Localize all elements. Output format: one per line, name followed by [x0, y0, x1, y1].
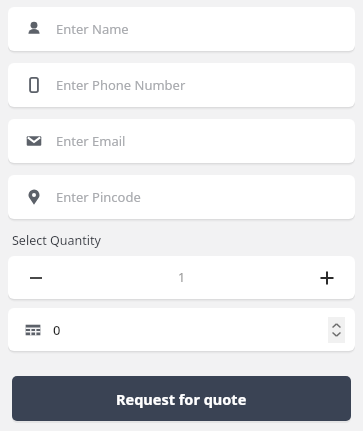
button[interactable]: Enter Pincode	[8, 175, 355, 219]
button[interactable]: Enter Name	[8, 7, 355, 51]
staticText: 0	[53, 321, 61, 339]
staticText: 1	[64, 269, 299, 286]
button[interactable]: Stepper	[328, 317, 345, 343]
staticText: Enter Name	[56, 20, 129, 38]
staticText: Enter Email	[56, 132, 126, 150]
button[interactable]: 0	[8, 308, 355, 351]
button[interactable]: Request for quote	[12, 376, 351, 421]
staticText: Enter Phone Number	[56, 76, 186, 94]
staticText: Enter Pincode	[56, 188, 141, 206]
staticText: Request for quote	[116, 389, 247, 409]
button[interactable]: Enter Phone Number	[8, 63, 355, 107]
button[interactable]: Enter Email	[8, 119, 355, 163]
staticText: Select Quantity	[12, 232, 101, 249]
button[interactable]: Decrease quantity	[8, 256, 64, 299]
button[interactable]: Increase quantity	[299, 256, 355, 299]
